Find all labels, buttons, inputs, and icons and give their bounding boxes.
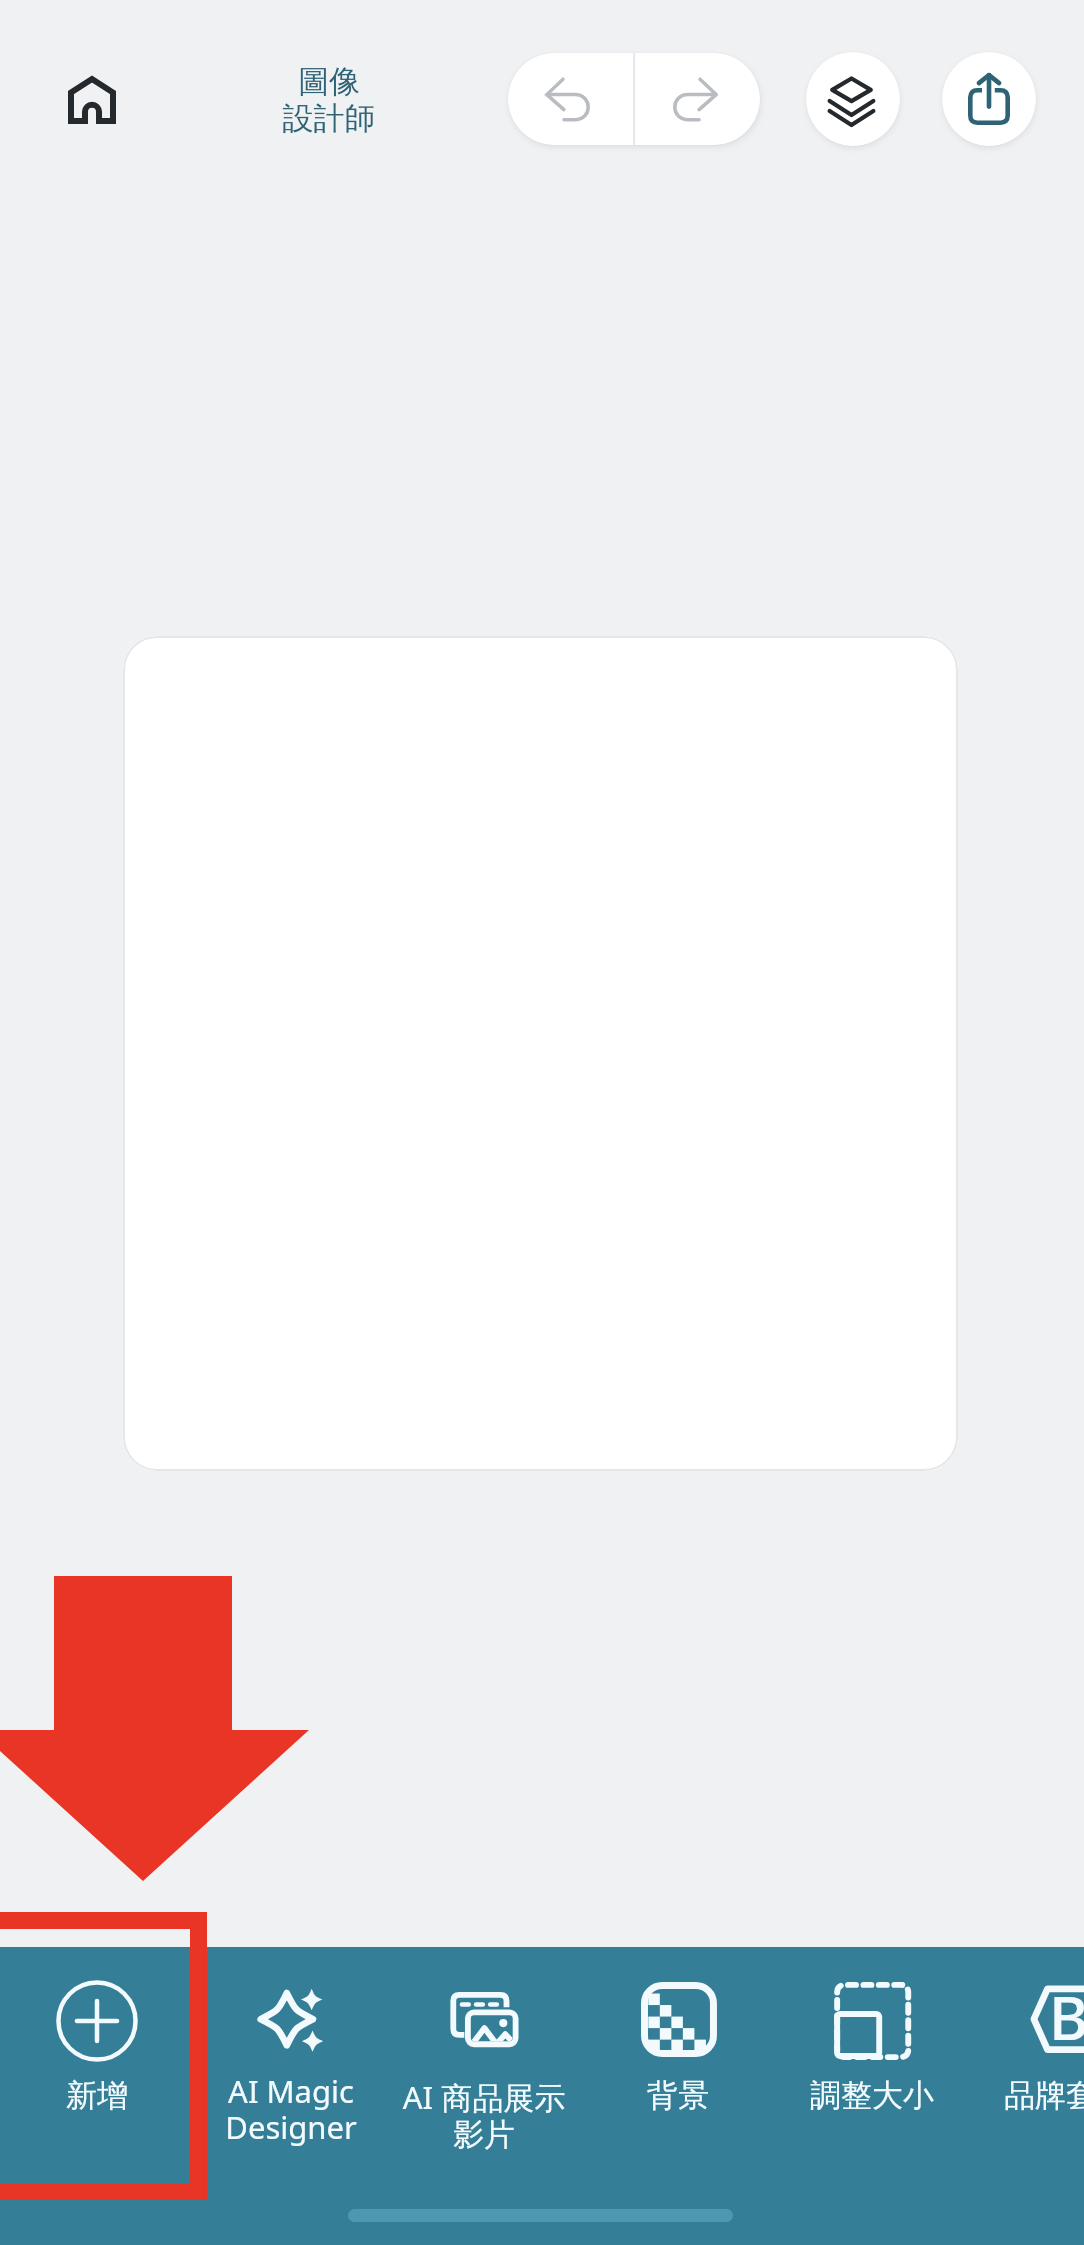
- staticText: AI 商品展示 影片: [388, 2076, 580, 2154]
- button[interactable]: AI 商品展示 影片: [388, 1947, 580, 2147]
- button[interactable]: B: [970, 1947, 1084, 2147]
- button[interactable]: Home: [52, 60, 132, 140]
- button[interactable]: 調整大小: [776, 1947, 968, 2147]
- button[interactable]: Share: [942, 52, 1036, 146]
- staticText: 新增: [1, 2076, 193, 2115]
- button[interactable]: Undo: [508, 53, 633, 145]
- button[interactable]: 圖像 設計師: [243, 62, 415, 138]
- staticText: 背景: [582, 2076, 774, 2115]
- button[interactable]: Redo: [635, 53, 760, 145]
- button[interactable]: AI Magic Designer: [195, 1947, 387, 2147]
- staticText: 品牌套用: [970, 2076, 1084, 2115]
- staticText: 調整大小: [776, 2076, 968, 2115]
- staticText: 圖像 設計師: [243, 62, 415, 138]
- button[interactable]: 新增: [1, 1947, 193, 2147]
- staticText: AI Magic Designer: [195, 2070, 387, 2148]
- button[interactable]: Layers: [806, 52, 900, 146]
- staticText: B: [1049, 1976, 1084, 2058]
- button[interactable]: 背景: [582, 1947, 774, 2147]
